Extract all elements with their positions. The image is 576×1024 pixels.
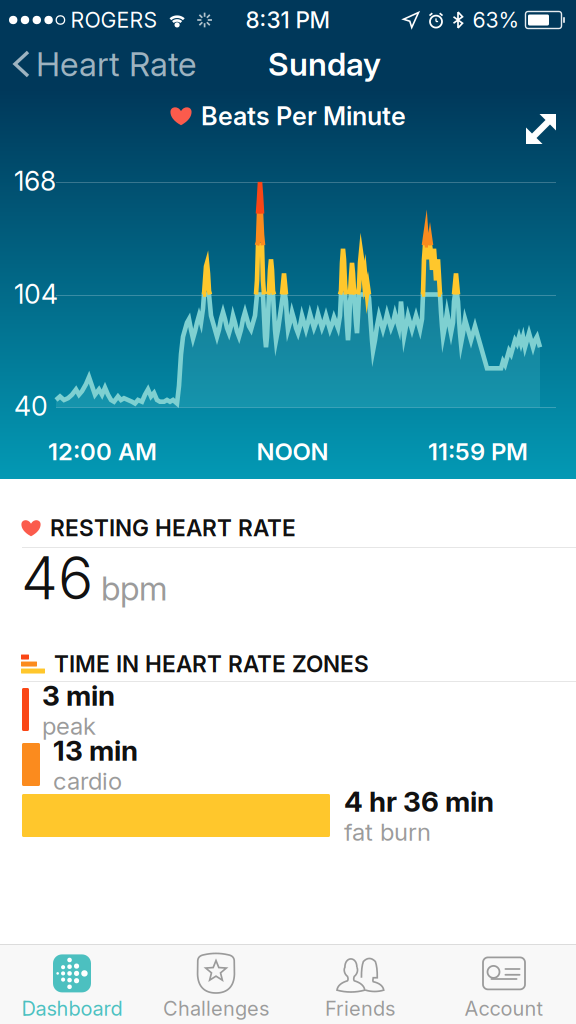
staticText: ROGERS: [71, 7, 158, 33]
staticText: 104: [14, 278, 58, 310]
staticText: 11:59 PM: [428, 437, 528, 466]
button[interactable]: Dashboard: [0, 944, 144, 1024]
staticText: fat burn: [344, 817, 431, 846]
staticText: RESTING HEART RATE: [50, 514, 296, 542]
staticText: Friends: [325, 996, 395, 1021]
staticText: 40: [14, 390, 48, 422]
button[interactable]: Account: [432, 944, 576, 1024]
staticText: Sunday: [268, 45, 381, 83]
staticText: 3 min: [42, 678, 115, 712]
staticText: NOON: [256, 437, 328, 466]
button[interactable]: Challenges: [144, 944, 288, 1024]
staticText: 4 hr 36 min: [344, 784, 494, 818]
staticText: 12:00 AM: [48, 437, 157, 466]
staticText: Beats Per Minute: [201, 101, 406, 131]
staticText: 63%: [472, 7, 519, 33]
staticText: Challenges: [163, 996, 269, 1021]
staticText: 46: [21, 542, 93, 613]
button[interactable]: Heart Rate: [0, 38, 196, 90]
staticText: 8:31 PM: [245, 6, 330, 34]
staticText: Account: [464, 996, 543, 1021]
staticText: peak: [42, 711, 96, 740]
staticText: cardio: [53, 766, 122, 795]
staticText: TIME IN HEART RATE ZONES: [54, 650, 369, 678]
staticText: 168: [14, 165, 56, 197]
staticText: bpm: [101, 568, 167, 608]
staticText: Dashboard: [21, 996, 122, 1021]
staticText: 13 min: [53, 733, 138, 767]
staticText: Heart Rate: [36, 44, 196, 84]
button[interactable]: Friends: [288, 944, 432, 1024]
button[interactable]: Expand chart: [514, 102, 568, 156]
